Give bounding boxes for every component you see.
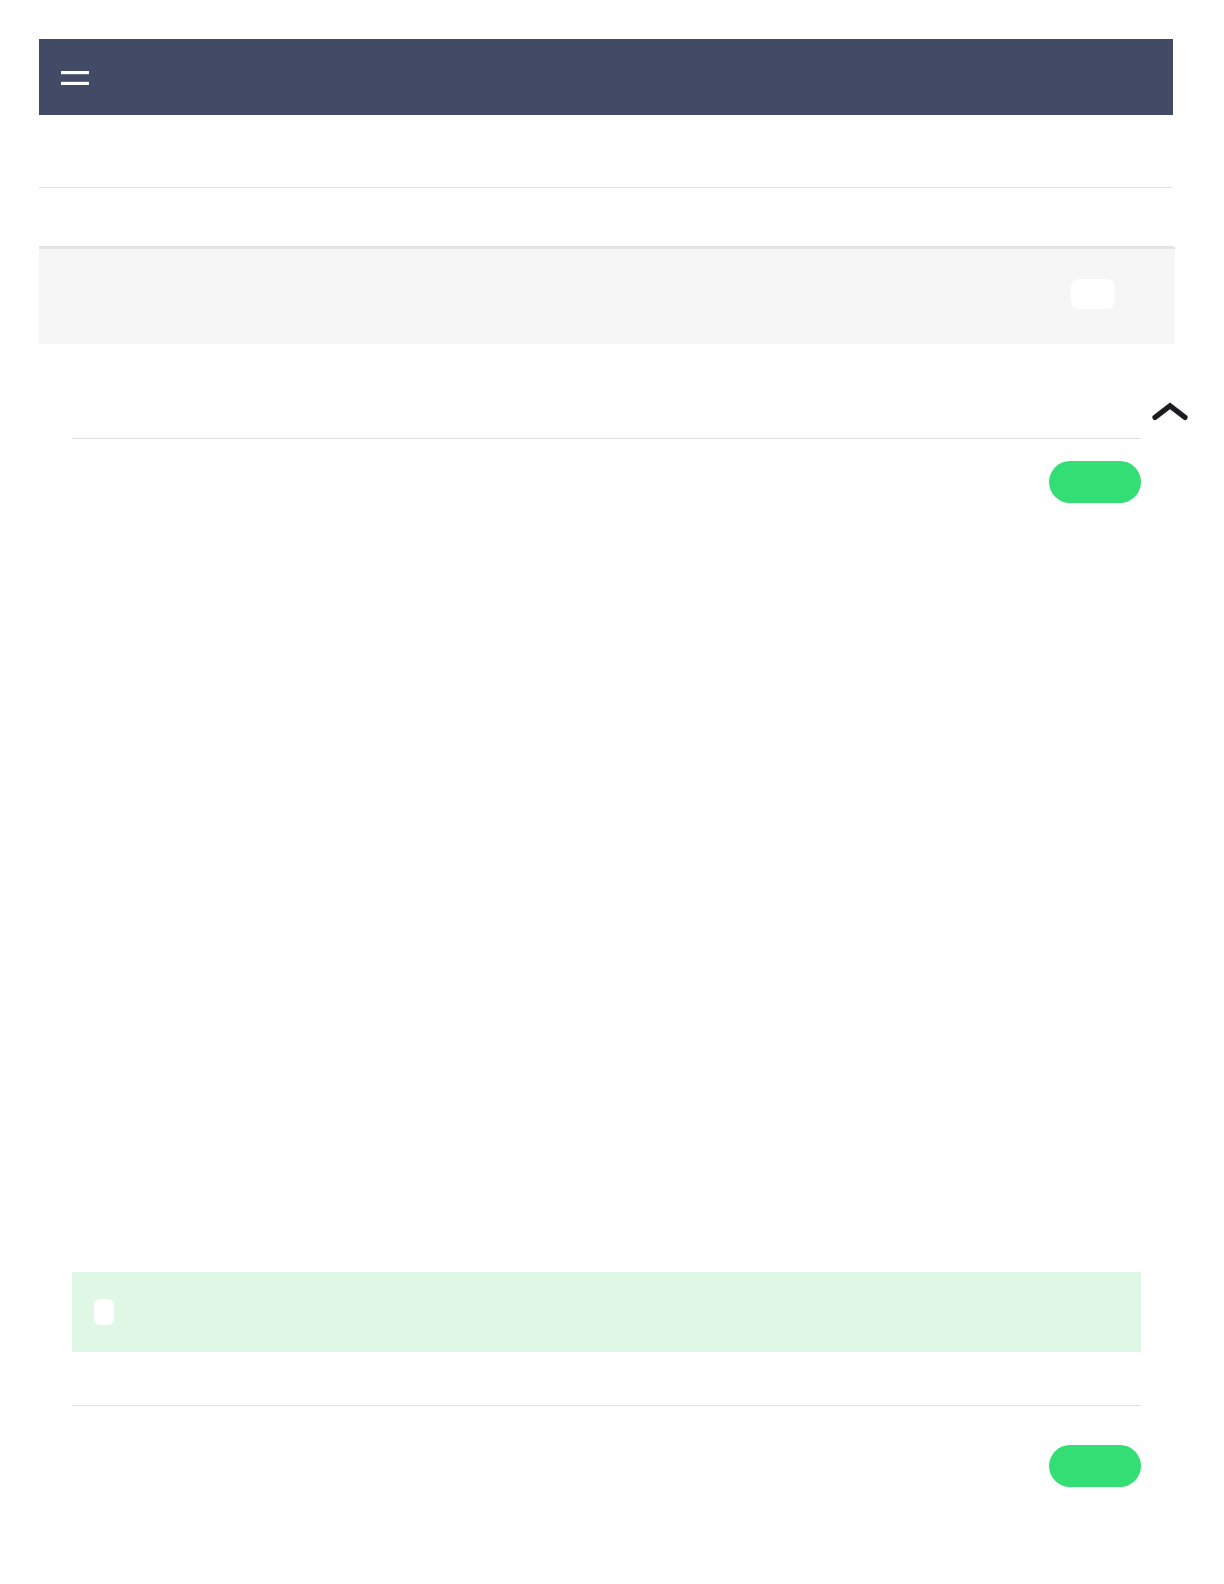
button[interactable]: Primary action <box>1049 461 1141 503</box>
button[interactable]: Primary action <box>1049 1445 1141 1487</box>
button[interactable]: Collapse section <box>1141 386 1199 438</box>
button[interactable]: Open navigation menu <box>53 59 97 97</box>
